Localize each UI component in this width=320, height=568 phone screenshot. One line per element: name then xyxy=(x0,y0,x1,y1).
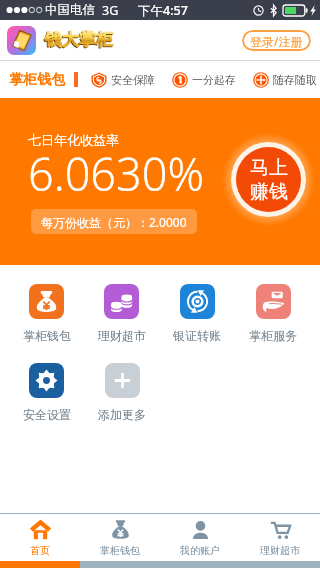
button[interactable]: 登录/注册 xyxy=(242,30,311,51)
button[interactable]: 掌柜钱包 xyxy=(80,514,160,561)
staticText: 掌柜钱包 xyxy=(23,328,71,343)
staticText: 每万份收益（元）：2.0000 xyxy=(41,214,187,230)
button[interactable]: 首页 xyxy=(0,514,80,561)
button[interactable]: 理财超市 xyxy=(240,514,320,561)
staticText: 添加更多 xyxy=(98,407,146,422)
staticText: 掌柜钱包 xyxy=(9,71,65,89)
staticText: 掌柜服务 xyxy=(249,328,297,343)
button[interactable]: 我的账户 xyxy=(160,514,240,561)
staticText: 钱大掌柜 xyxy=(44,30,112,51)
staticText: 中国电信 xyxy=(45,2,95,18)
staticText: 理财超市 xyxy=(260,544,300,557)
staticText: 首页 xyxy=(30,544,50,557)
staticText: 安全保障 xyxy=(111,73,155,87)
staticText: 3G xyxy=(102,2,119,19)
staticText: 七日年化收益率 xyxy=(28,132,119,148)
staticText: 银证转账 xyxy=(173,328,221,343)
staticText: 理财超市 xyxy=(98,328,146,343)
staticText: 下午4:57 xyxy=(138,2,188,19)
button[interactable]: 添加更多 xyxy=(84,363,160,422)
staticText: 我的账户 xyxy=(180,544,220,557)
staticText: 钱大掌柜 xyxy=(45,29,113,50)
staticText: 随存随取 xyxy=(273,73,317,87)
button[interactable]: 马上 赚钱 xyxy=(236,147,301,212)
button[interactable]: 理财超市 xyxy=(84,284,159,343)
button[interactable]: 掌柜服务 xyxy=(235,284,311,343)
button[interactable]: 银证转账 xyxy=(159,284,235,343)
button[interactable]: 安全设置 xyxy=(9,363,84,422)
button[interactable]: 掌柜钱包 xyxy=(9,284,84,343)
staticText: 6.0630% xyxy=(28,143,204,204)
staticText: 马上 赚钱 xyxy=(250,156,288,204)
staticText: 安全设置 xyxy=(23,407,71,422)
staticText: 掌柜钱包 xyxy=(100,544,140,557)
staticText: 一分起存 xyxy=(192,73,236,87)
staticText: 登录/注册 xyxy=(250,33,303,49)
